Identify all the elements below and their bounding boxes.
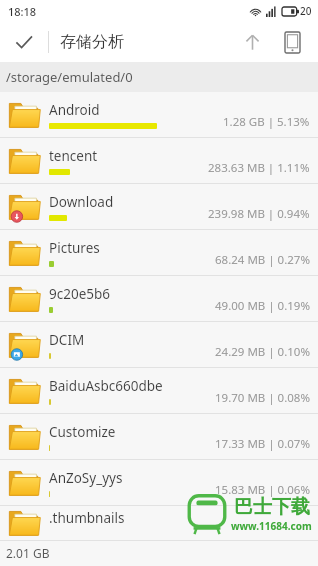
staticText: 17.33 MB | 0.07% (215, 436, 310, 452)
button[interactable]: AnZoSy_yys (0, 460, 318, 505)
staticText: www.11684.com (231, 519, 312, 533)
staticText: 存储分析 (60, 32, 124, 52)
staticText: BaiduAsbc660dbe (49, 377, 163, 395)
staticText: .thumbnails (49, 509, 125, 527)
button[interactable]: BaiduAsbc660dbe (0, 368, 318, 413)
staticText: 283.63 MB | 1.11% (208, 160, 310, 176)
button[interactable]: Internal storage (272, 22, 312, 62)
button[interactable]: Android (0, 92, 318, 137)
staticText: 19.70 MB | 0.08% (215, 390, 310, 406)
staticText: 2.01 GB (6, 545, 50, 561)
staticText: 68.24 MB | 0.27% (215, 252, 310, 268)
button[interactable]: .thumbnails (0, 506, 318, 540)
staticText: Download (49, 193, 114, 211)
staticText: 24.29 MB | 0.10% (215, 344, 310, 360)
staticText: 49.00 MB | 0.19% (215, 298, 310, 314)
button[interactable]: Up one level (232, 22, 272, 62)
staticText: 1.28 GB | 5.13% (223, 114, 310, 130)
staticText: 9c20e5b6 (49, 285, 111, 303)
button[interactable]: tencent (0, 138, 318, 183)
staticText: 18:18 (8, 4, 37, 19)
staticText: Android (49, 101, 100, 119)
staticText: tencent (49, 147, 98, 165)
button[interactable]: Confirm (4, 22, 44, 62)
staticText: 239.98 MB | 0.94% (208, 206, 310, 222)
button[interactable]: 9c20e5b6 (0, 276, 318, 321)
button[interactable]: Customize (0, 414, 318, 459)
staticText: Pictures (49, 239, 100, 257)
button[interactable]: DCIM (0, 322, 318, 367)
staticText: AnZoSy_yys (49, 469, 123, 487)
button[interactable]: Download (0, 184, 318, 229)
staticText: Customize (49, 423, 116, 441)
staticText: 15.83 MB | 0.06% (215, 482, 310, 498)
button[interactable]: Pictures (0, 230, 318, 275)
staticText: 巴士下载 (234, 495, 310, 519)
staticText: /storage/emulated/0 (6, 68, 133, 86)
staticText: 20 (300, 4, 312, 18)
staticText: DCIM (49, 331, 85, 349)
